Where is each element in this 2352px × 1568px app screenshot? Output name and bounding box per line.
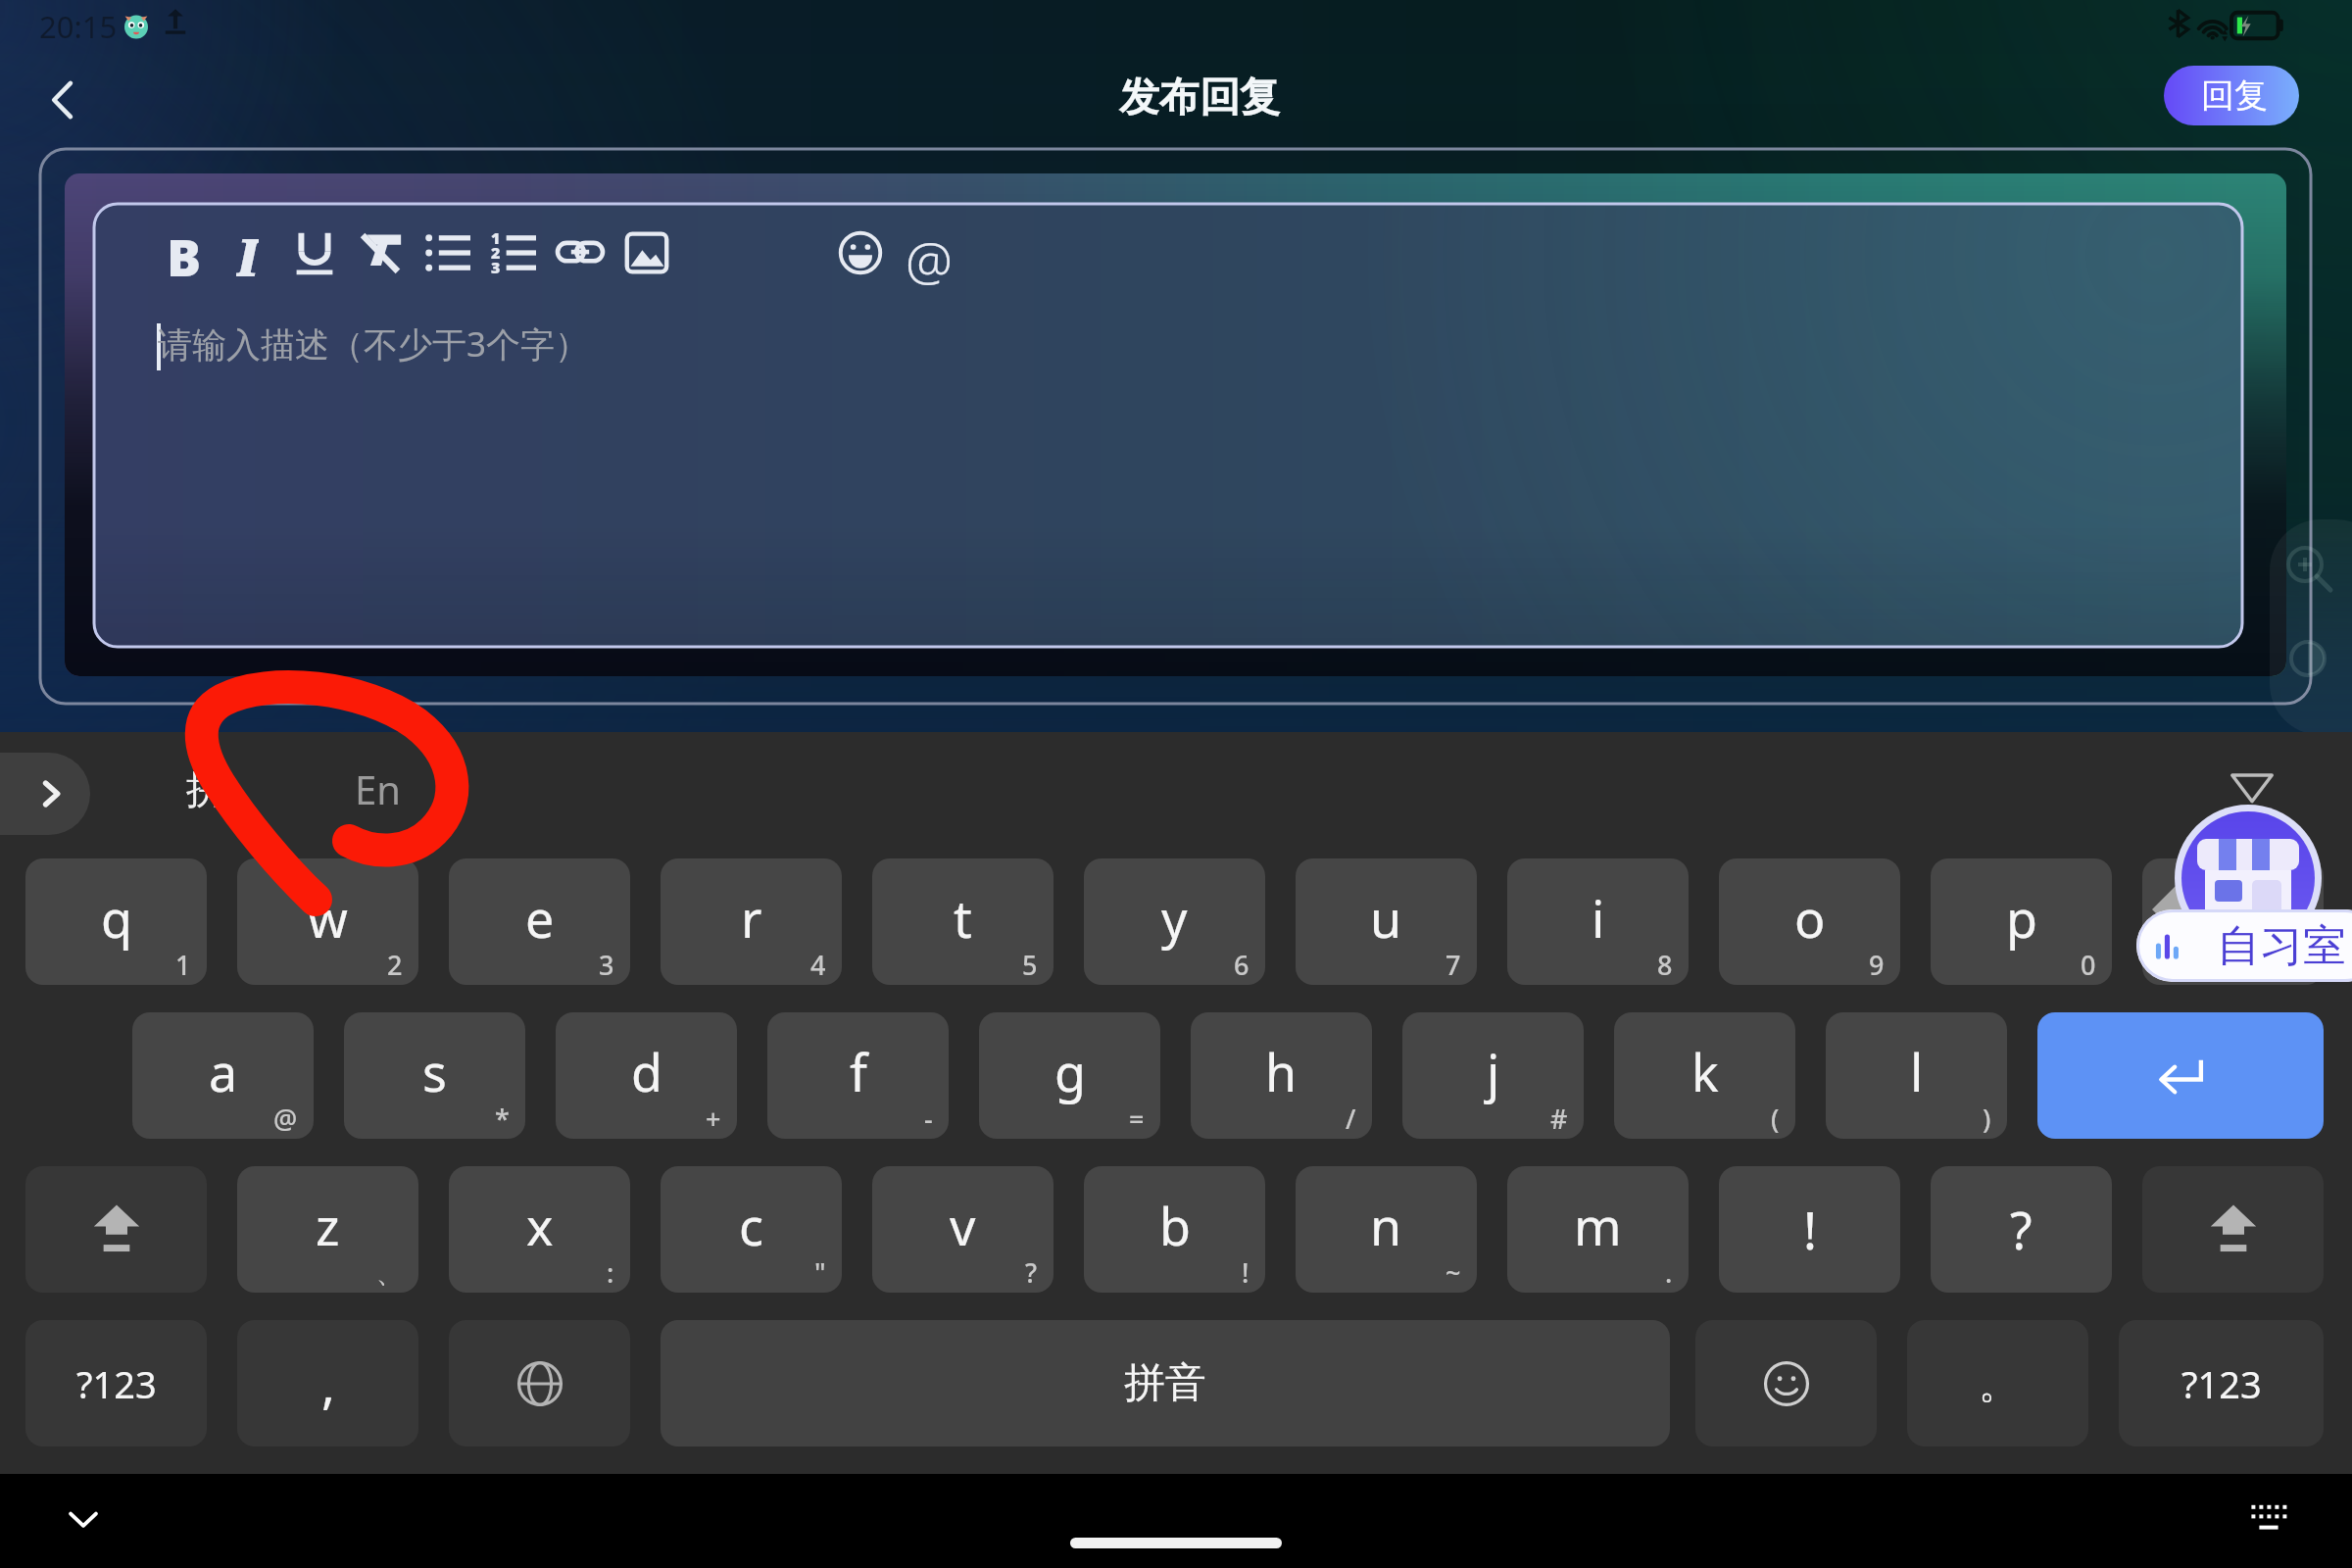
button[interactable]: r: [661, 858, 842, 985]
staticText: B: [167, 221, 202, 284]
button[interactable]: ?123: [2119, 1320, 2324, 1446]
button[interactable]: d: [556, 1012, 737, 1139]
staticText: x: [526, 1191, 554, 1260]
button[interactable]: w: [237, 858, 418, 985]
staticText: o: [1794, 883, 1826, 953]
button[interactable]: ,: [237, 1320, 418, 1446]
button[interactable]: !: [1719, 1166, 1900, 1293]
staticText: v: [950, 1191, 976, 1260]
button[interactable]: smile: [1695, 1320, 1877, 1446]
button[interactable]: x: [449, 1166, 630, 1293]
staticText: h: [1265, 1037, 1298, 1106]
button[interactable]: u: [1296, 858, 1477, 985]
staticText: 2: [491, 242, 501, 264]
staticText: t: [954, 883, 972, 953]
staticText: ,: [321, 1348, 335, 1418]
staticText: 20:15: [39, 6, 118, 47]
staticText: 7: [1445, 947, 1461, 983]
button[interactable]: y: [1084, 858, 1265, 985]
button[interactable]: ?123: [25, 1320, 207, 1446]
button[interactable]: l: [1826, 1012, 2007, 1139]
button[interactable]: z: [237, 1166, 418, 1293]
button[interactable]: Clear formatting: [349, 221, 412, 284]
staticText: n: [1370, 1191, 1402, 1260]
staticText: i: [1592, 883, 1605, 953]
staticText: !: [1803, 1195, 1817, 1264]
button[interactable]: globe: [449, 1320, 630, 1446]
button[interactable]: Mention: [898, 221, 960, 284]
button[interactable]: g: [979, 1012, 1160, 1139]
staticText: s: [422, 1037, 447, 1106]
button[interactable]: i: [1507, 858, 1689, 985]
button[interactable]: a: [132, 1012, 314, 1139]
staticText: 拼音: [1124, 1357, 1206, 1409]
button[interactable]: shift: [25, 1166, 207, 1293]
button[interactable]: n: [1296, 1166, 1477, 1293]
staticText: z: [316, 1191, 340, 1260]
button[interactable]: 。: [1907, 1320, 2088, 1446]
staticText: e: [525, 883, 555, 953]
button[interactable]: Underline: [283, 221, 346, 284]
button[interactable]: k: [1614, 1012, 1795, 1139]
button[interactable]: c: [661, 1166, 842, 1293]
button[interactable]: q: [25, 858, 207, 985]
button[interactable]: e: [449, 858, 630, 985]
button[interactable]: En: [323, 745, 431, 833]
staticText: r: [741, 883, 762, 953]
staticText: 回复: [2201, 74, 2268, 117]
button[interactable]: Hide suggestions: [2213, 745, 2291, 829]
staticText: 2: [387, 947, 403, 983]
button[interactable]: v: [872, 1166, 1053, 1293]
staticText: @: [273, 1101, 298, 1137]
button[interactable]: Back: [20, 57, 106, 143]
staticText: 1: [175, 947, 191, 983]
staticText: 请输入描述（不少于3个字）: [158, 320, 590, 367]
button[interactable]: m: [1507, 1166, 1689, 1293]
button[interactable]: Description input: [94, 204, 2242, 647]
staticText: ): [1983, 1101, 1991, 1137]
button[interactable]: Italic: [216, 221, 278, 284]
staticText: g: [1054, 1037, 1086, 1106]
button[interactable]: h: [1191, 1012, 1372, 1139]
button[interactable]: 回复: [2164, 66, 2299, 125]
button[interactable]: 拼音: [661, 1320, 1670, 1446]
button[interactable]: Numbered list: [482, 221, 545, 284]
staticText: m: [1574, 1191, 1622, 1260]
button[interactable]: o: [1719, 858, 1900, 985]
button[interactable]: shift: [2142, 1166, 2324, 1293]
button[interactable]: f: [767, 1012, 949, 1139]
staticText: 拼: [186, 764, 225, 813]
staticText: j: [1487, 1037, 1500, 1106]
staticText: 4: [810, 947, 826, 983]
button[interactable]: Emoji: [829, 221, 892, 284]
button[interactable]: Bullet list: [416, 221, 479, 284]
staticText: ?: [2010, 1195, 2033, 1264]
button[interactable]: 自习室: [2136, 909, 2352, 982]
staticText: =: [1129, 1101, 1145, 1137]
staticText: @: [906, 223, 953, 286]
button[interactable]: Insert image: [615, 221, 678, 284]
button[interactable]: p: [1931, 858, 2112, 985]
button[interactable]: enter: [2037, 1012, 2324, 1139]
button[interactable]: Bold: [153, 221, 216, 284]
button[interactable]: Expand toolbar: [0, 753, 90, 835]
button[interactable]: Switch input method: [2234, 1482, 2303, 1550]
button[interactable]: s: [344, 1012, 525, 1139]
staticText: 。: [1979, 1359, 2018, 1408]
button[interactable]: ?: [1931, 1166, 2112, 1293]
button[interactable]: Insert link: [549, 221, 612, 284]
button[interactable]: b: [1084, 1166, 1265, 1293]
staticText: b: [1159, 1191, 1191, 1260]
button[interactable]: Collapse keyboard: [44, 1480, 122, 1558]
staticText: 自习室: [2217, 919, 2346, 973]
staticText: 5: [1022, 947, 1038, 983]
button[interactable]: 拼: [152, 745, 260, 833]
button[interactable]: backspace: [2142, 858, 2324, 985]
staticText: 1: [491, 227, 501, 249]
button[interactable]: t: [872, 858, 1053, 985]
button[interactable]: j: [1402, 1012, 1584, 1139]
staticText: +: [706, 1101, 721, 1137]
staticText: q: [101, 883, 132, 953]
staticText: 发布回复: [1119, 73, 1280, 123]
staticText: d: [631, 1037, 662, 1106]
